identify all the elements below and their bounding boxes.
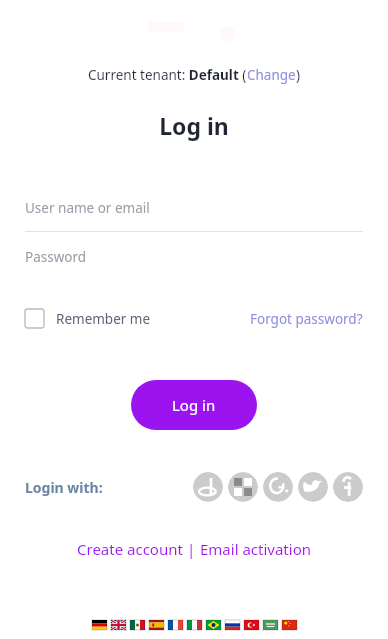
button[interactable]: English <box>111 620 126 630</box>
staticText: User name or email <box>25 199 150 217</box>
button[interactable]: Google login <box>263 472 293 502</box>
button[interactable]: Log in <box>131 380 257 430</box>
button[interactable]: 中文 <box>282 620 297 630</box>
staticText: | <box>183 539 200 559</box>
staticText: Email activation <box>200 539 311 559</box>
button[interactable]: Twitter login <box>298 472 328 502</box>
staticText: Log in <box>159 110 229 141</box>
staticText: Current tenant: Default ( <box>88 66 247 84</box>
button[interactable]: Password <box>25 248 363 281</box>
button[interactable]: Facebook login <box>333 472 363 502</box>
button[interactable]: Deutsch <box>92 620 107 630</box>
staticText: Login with: <box>25 478 103 497</box>
button[interactable]: Español <box>149 620 164 630</box>
button[interactable]: Português <box>206 620 221 630</box>
staticText: Create account <box>77 539 183 559</box>
button[interactable]: Türkçe <box>244 620 259 630</box>
button[interactable]: Microsoft login <box>228 472 258 502</box>
button[interactable]: User name or email <box>25 199 363 232</box>
button[interactable]: Email activation <box>200 539 311 559</box>
staticText: ) <box>296 66 301 84</box>
staticText: Change <box>247 66 296 84</box>
staticText: Remember me <box>56 310 151 328</box>
button[interactable]: Remember me <box>25 309 151 328</box>
button[interactable]: Français <box>168 620 183 630</box>
button[interactable]: Forgot password? <box>250 310 363 328</box>
button[interactable]: हिन्दी <box>263 620 278 630</box>
button[interactable]: Create account <box>77 539 183 559</box>
staticText: Forgot password? <box>250 310 363 328</box>
button[interactable]: Español de México <box>130 620 145 630</box>
staticText: Log in <box>172 395 216 415</box>
button[interactable]: Русский <box>225 620 240 630</box>
button[interactable]: Change <box>247 66 296 84</box>
staticText: Password <box>25 248 87 266</box>
button[interactable]: Italiano <box>187 620 202 630</box>
button[interactable]: OpenID login <box>193 472 223 502</box>
